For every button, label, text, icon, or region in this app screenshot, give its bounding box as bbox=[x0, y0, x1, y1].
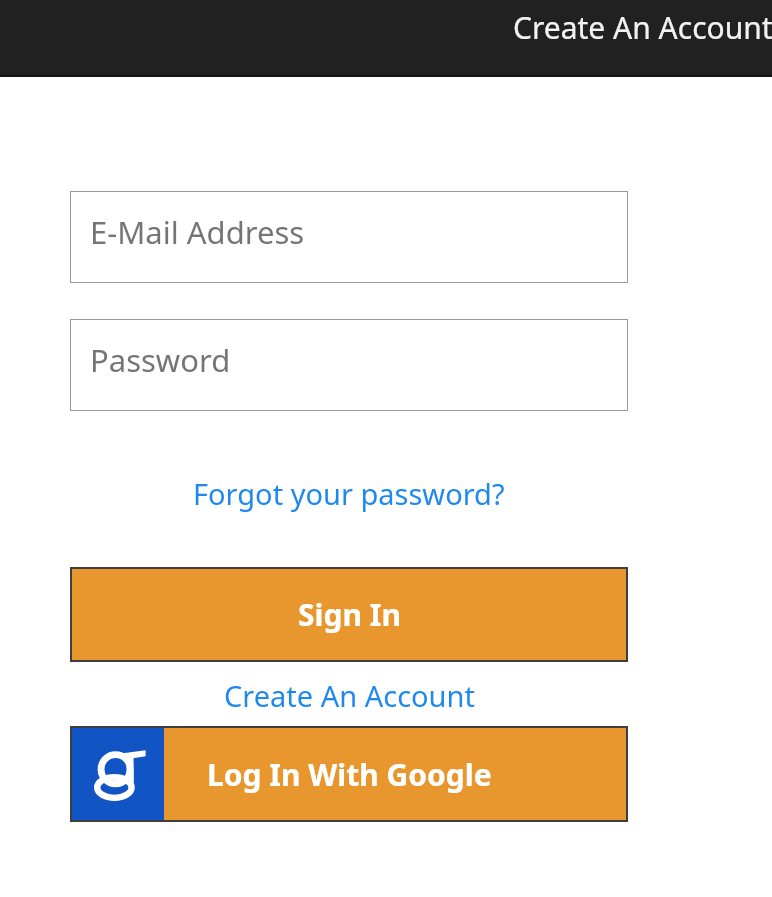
staticText: E-Mail Address bbox=[90, 211, 305, 253]
staticText: Forgot your password? bbox=[193, 474, 505, 513]
other: Google bbox=[88, 744, 148, 804]
staticText: Create An Account bbox=[513, 7, 772, 48]
button[interactable]: Sign In bbox=[72, 569, 626, 660]
staticText: Sign In bbox=[298, 594, 401, 635]
staticText: Password bbox=[90, 339, 231, 381]
button[interactable]: Forgot your password? bbox=[70, 470, 628, 516]
button[interactable]: Create An Account bbox=[70, 671, 628, 719]
button[interactable]: Log In With Google bbox=[72, 728, 626, 820]
button[interactable]: Password bbox=[70, 319, 628, 411]
staticText: Log In With Google bbox=[207, 754, 492, 795]
staticText: Create An Account bbox=[224, 676, 475, 715]
button[interactable]: E-Mail Address bbox=[70, 191, 628, 283]
